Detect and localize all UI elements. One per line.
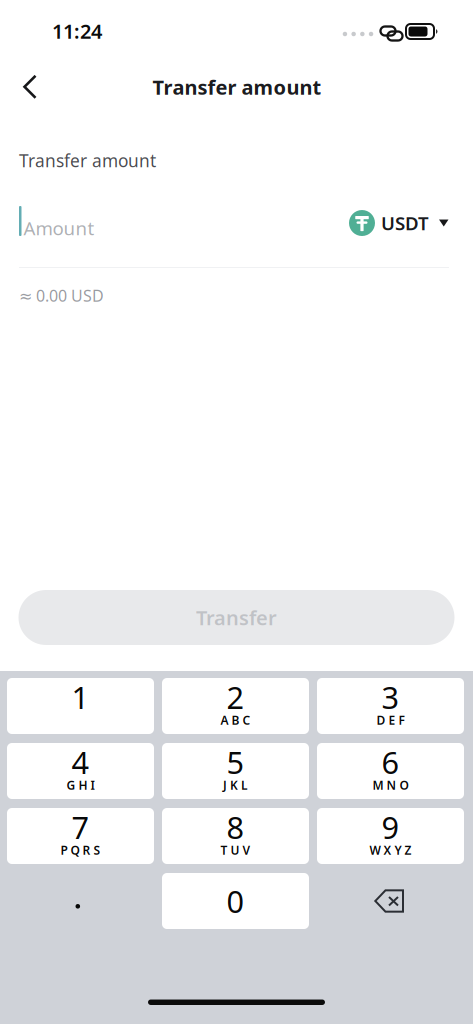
button[interactable]: 5 — [162, 743, 309, 799]
staticText: 3 — [381, 677, 399, 717]
button[interactable]: Back — [8, 65, 52, 109]
staticText: 0 — [226, 881, 244, 921]
staticText: ≈ 0.00 USD — [19, 285, 104, 306]
staticText: 4 — [71, 742, 89, 782]
button[interactable]: 0 — [162, 873, 309, 929]
staticText: 5 — [226, 742, 244, 782]
button[interactable]: 6 — [317, 743, 464, 799]
staticText: D E F — [376, 712, 404, 728]
staticText: W X Y Z — [369, 842, 411, 858]
button[interactable]: 4 — [7, 743, 154, 799]
staticText: Transfer — [196, 604, 277, 631]
staticText: 9 — [381, 807, 399, 847]
button[interactable]: 7 — [7, 808, 154, 864]
staticText: G H I — [66, 777, 94, 793]
staticText: M N O — [372, 777, 408, 793]
button[interactable]: 9 — [317, 808, 464, 864]
button[interactable]: Delete — [317, 873, 464, 929]
button[interactable]: 1 — [7, 678, 154, 734]
staticText: J K L — [223, 777, 248, 793]
staticText: 7 — [71, 807, 89, 847]
button[interactable]: 8 — [162, 808, 309, 864]
button[interactable]: 3 — [317, 678, 464, 734]
staticText: 2 — [226, 677, 244, 717]
staticText: USDT — [381, 211, 429, 235]
staticText: P Q R S — [60, 842, 100, 858]
staticText: 11:24 — [52, 18, 102, 44]
staticText: Transfer amount — [152, 74, 321, 100]
staticText: Amount — [23, 216, 94, 240]
staticText: Transfer amount — [19, 149, 156, 172]
button[interactable]: 2 — [162, 678, 309, 734]
staticText: 8 — [226, 807, 244, 847]
staticText: 6 — [381, 742, 399, 782]
button[interactable]: Decimal point — [7, 873, 154, 929]
staticText: T U V — [220, 842, 250, 858]
staticText: A B C — [220, 712, 250, 728]
button[interactable]: Transfer — [18, 590, 454, 645]
staticText: 1 — [71, 677, 89, 717]
